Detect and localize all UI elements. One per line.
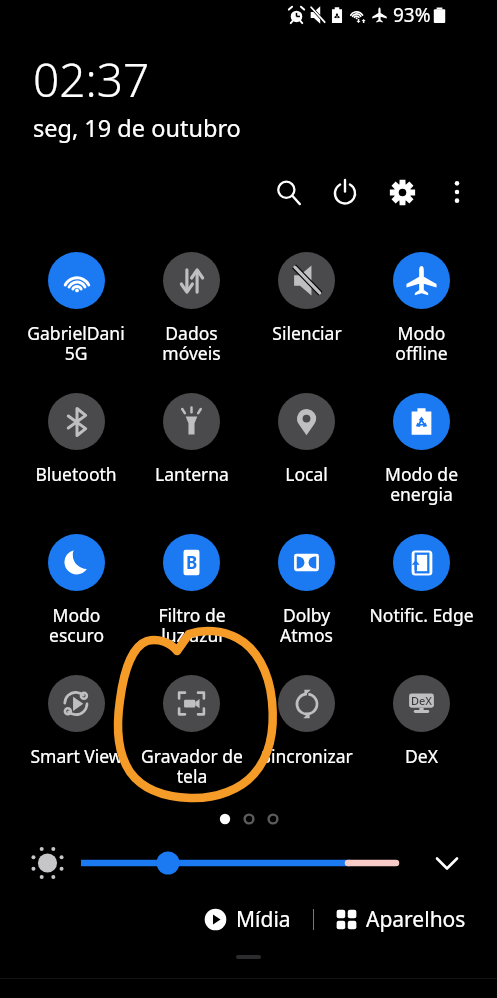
staticText: 93%: [393, 2, 431, 28]
staticText: Silenciar: [272, 321, 342, 345]
staticText: Bluetooth: [35, 462, 117, 486]
button[interactable]: Notific. Edge: [364, 534, 479, 627]
button[interactable]: Dolby Atmos: [249, 534, 364, 648]
staticText: Notific. Edge: [369, 603, 474, 627]
button[interactable]: Silenciar: [249, 252, 364, 345]
staticText: Dolby Atmos: [280, 603, 333, 648]
staticText: Smart View: [30, 744, 123, 768]
staticText: seg, 19 de outubro: [33, 112, 241, 144]
button[interactable]: Modo de energia: [364, 393, 479, 507]
staticText: Modo de energia: [385, 462, 458, 507]
staticText: Lanterna: [155, 462, 229, 486]
button[interactable]: Dados móveis: [134, 252, 249, 366]
staticText: Sincronizar: [261, 744, 353, 768]
button[interactable]: Smart View: [18, 675, 134, 768]
button[interactable]: Expand brightness: [425, 846, 469, 880]
staticText: Aparelhos: [366, 905, 466, 934]
staticText: Gravador de tela: [141, 744, 243, 789]
button[interactable]: Modo escuro: [18, 534, 134, 648]
staticText: Mídia: [236, 905, 291, 934]
staticText: Modo escuro: [49, 603, 104, 648]
button[interactable]: Search: [266, 170, 310, 214]
button[interactable]: DeX: [364, 675, 479, 768]
staticText: Filtro de luz azul: [158, 603, 226, 648]
staticText: 02:37: [33, 48, 150, 111]
staticText: DeX: [411, 693, 433, 708]
staticText: Dados móveis: [162, 321, 221, 366]
button[interactable]: Mídia: [200, 900, 295, 939]
button[interactable]: Local: [249, 393, 364, 486]
button[interactable]: GabrielDani 5G: [18, 252, 134, 366]
button[interactable]: More options: [435, 170, 479, 214]
staticText: B: [186, 551, 198, 574]
button[interactable]: Bluetooth: [18, 393, 134, 486]
staticText: Modo offline: [395, 321, 448, 366]
button[interactable]: Settings: [380, 170, 424, 214]
button[interactable]: Lanterna: [134, 393, 249, 486]
button[interactable]: Modo offline: [364, 252, 479, 366]
staticText: Local: [285, 462, 328, 486]
button[interactable]: B: [134, 534, 249, 648]
button[interactable]: Power: [323, 170, 367, 214]
staticText: GabrielDani 5G: [27, 321, 125, 366]
button[interactable]: Aparelhos: [332, 900, 470, 939]
staticText: DeX: [405, 744, 438, 768]
button[interactable]: Sincronizar: [249, 675, 364, 768]
button[interactable]: Gravador de tela: [134, 675, 249, 789]
